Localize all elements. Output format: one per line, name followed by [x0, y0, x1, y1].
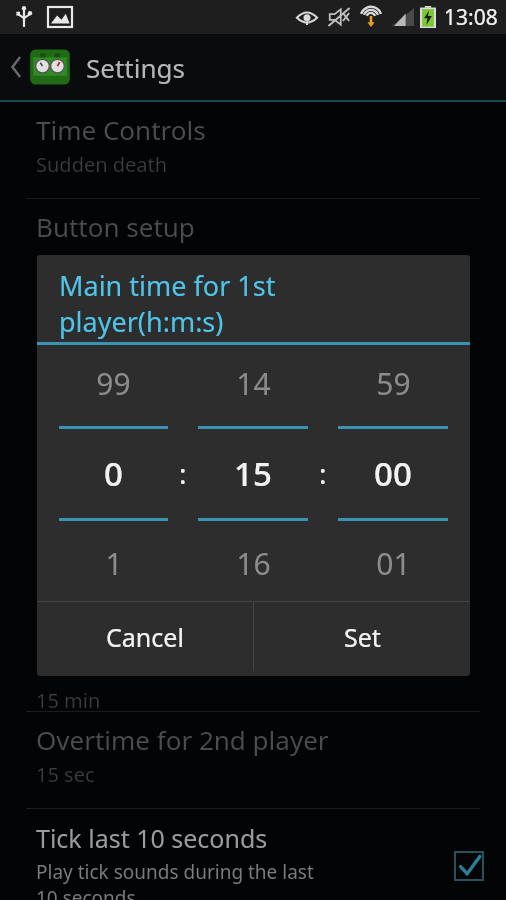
- button[interactable]: Cancel: [37, 602, 253, 671]
- staticText: 15 sec: [36, 761, 95, 788]
- staticText: Button setup: [36, 209, 195, 244]
- staticText: 13:08: [444, 3, 498, 32]
- staticText: 00: [374, 451, 412, 496]
- staticText: 01: [376, 543, 411, 584]
- staticText: 14: [236, 363, 271, 404]
- button[interactable]: 59: [334, 345, 452, 601]
- staticText: Settings: [86, 50, 185, 85]
- staticText: 59: [376, 363, 411, 404]
- staticText: 16: [236, 543, 271, 584]
- button[interactable]: Set: [254, 602, 470, 671]
- staticText: :: [319, 454, 327, 492]
- other: Back: [4, 55, 28, 79]
- staticText: Set: [344, 620, 381, 654]
- staticText: 0: [104, 451, 123, 496]
- staticText: Time Controls: [36, 112, 206, 147]
- staticText: Main time for 1st player(h:m:s): [59, 267, 276, 340]
- staticText: 99: [96, 363, 131, 404]
- button[interactable]: Back: [0, 34, 506, 100]
- staticText: 1: [105, 543, 123, 584]
- staticText: Play tick sounds during the last 10 seco…: [36, 859, 314, 900]
- button[interactable]: Tick last 10 seconds: [0, 809, 506, 900]
- button[interactable]: Overtime for 2nd player: [0, 712, 506, 808]
- button[interactable]: Button setup: [0, 199, 506, 295]
- button[interactable]: 14: [194, 345, 312, 601]
- staticText: :: [179, 454, 187, 492]
- staticText: Overtime for 2nd player: [36, 722, 329, 757]
- staticText: Cancel: [106, 620, 184, 654]
- staticText: Sudden death: [36, 151, 168, 178]
- button[interactable]: 99: [55, 345, 172, 601]
- staticText: 15 min: [36, 687, 101, 711]
- staticText: Tick last 10 seconds: [36, 821, 268, 855]
- staticText: 15: [234, 451, 272, 496]
- button[interactable]: 15 min: [0, 677, 506, 711]
- button[interactable]: Time Controls: [0, 102, 506, 198]
